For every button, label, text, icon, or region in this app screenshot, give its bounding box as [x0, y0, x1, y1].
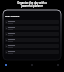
button[interactable] — [5, 44, 59, 48]
staticText: Daily Planner — [5, 15, 20, 18]
button[interactable] — [5, 32, 59, 36]
button[interactable] — [5, 38, 59, 42]
button[interactable] — [5, 50, 59, 54]
button[interactable] — [5, 26, 59, 30]
staticText: Organize the day with a — [17, 1, 47, 4]
button[interactable] — [5, 20, 59, 24]
staticText: powerful planner — [21, 4, 43, 7]
